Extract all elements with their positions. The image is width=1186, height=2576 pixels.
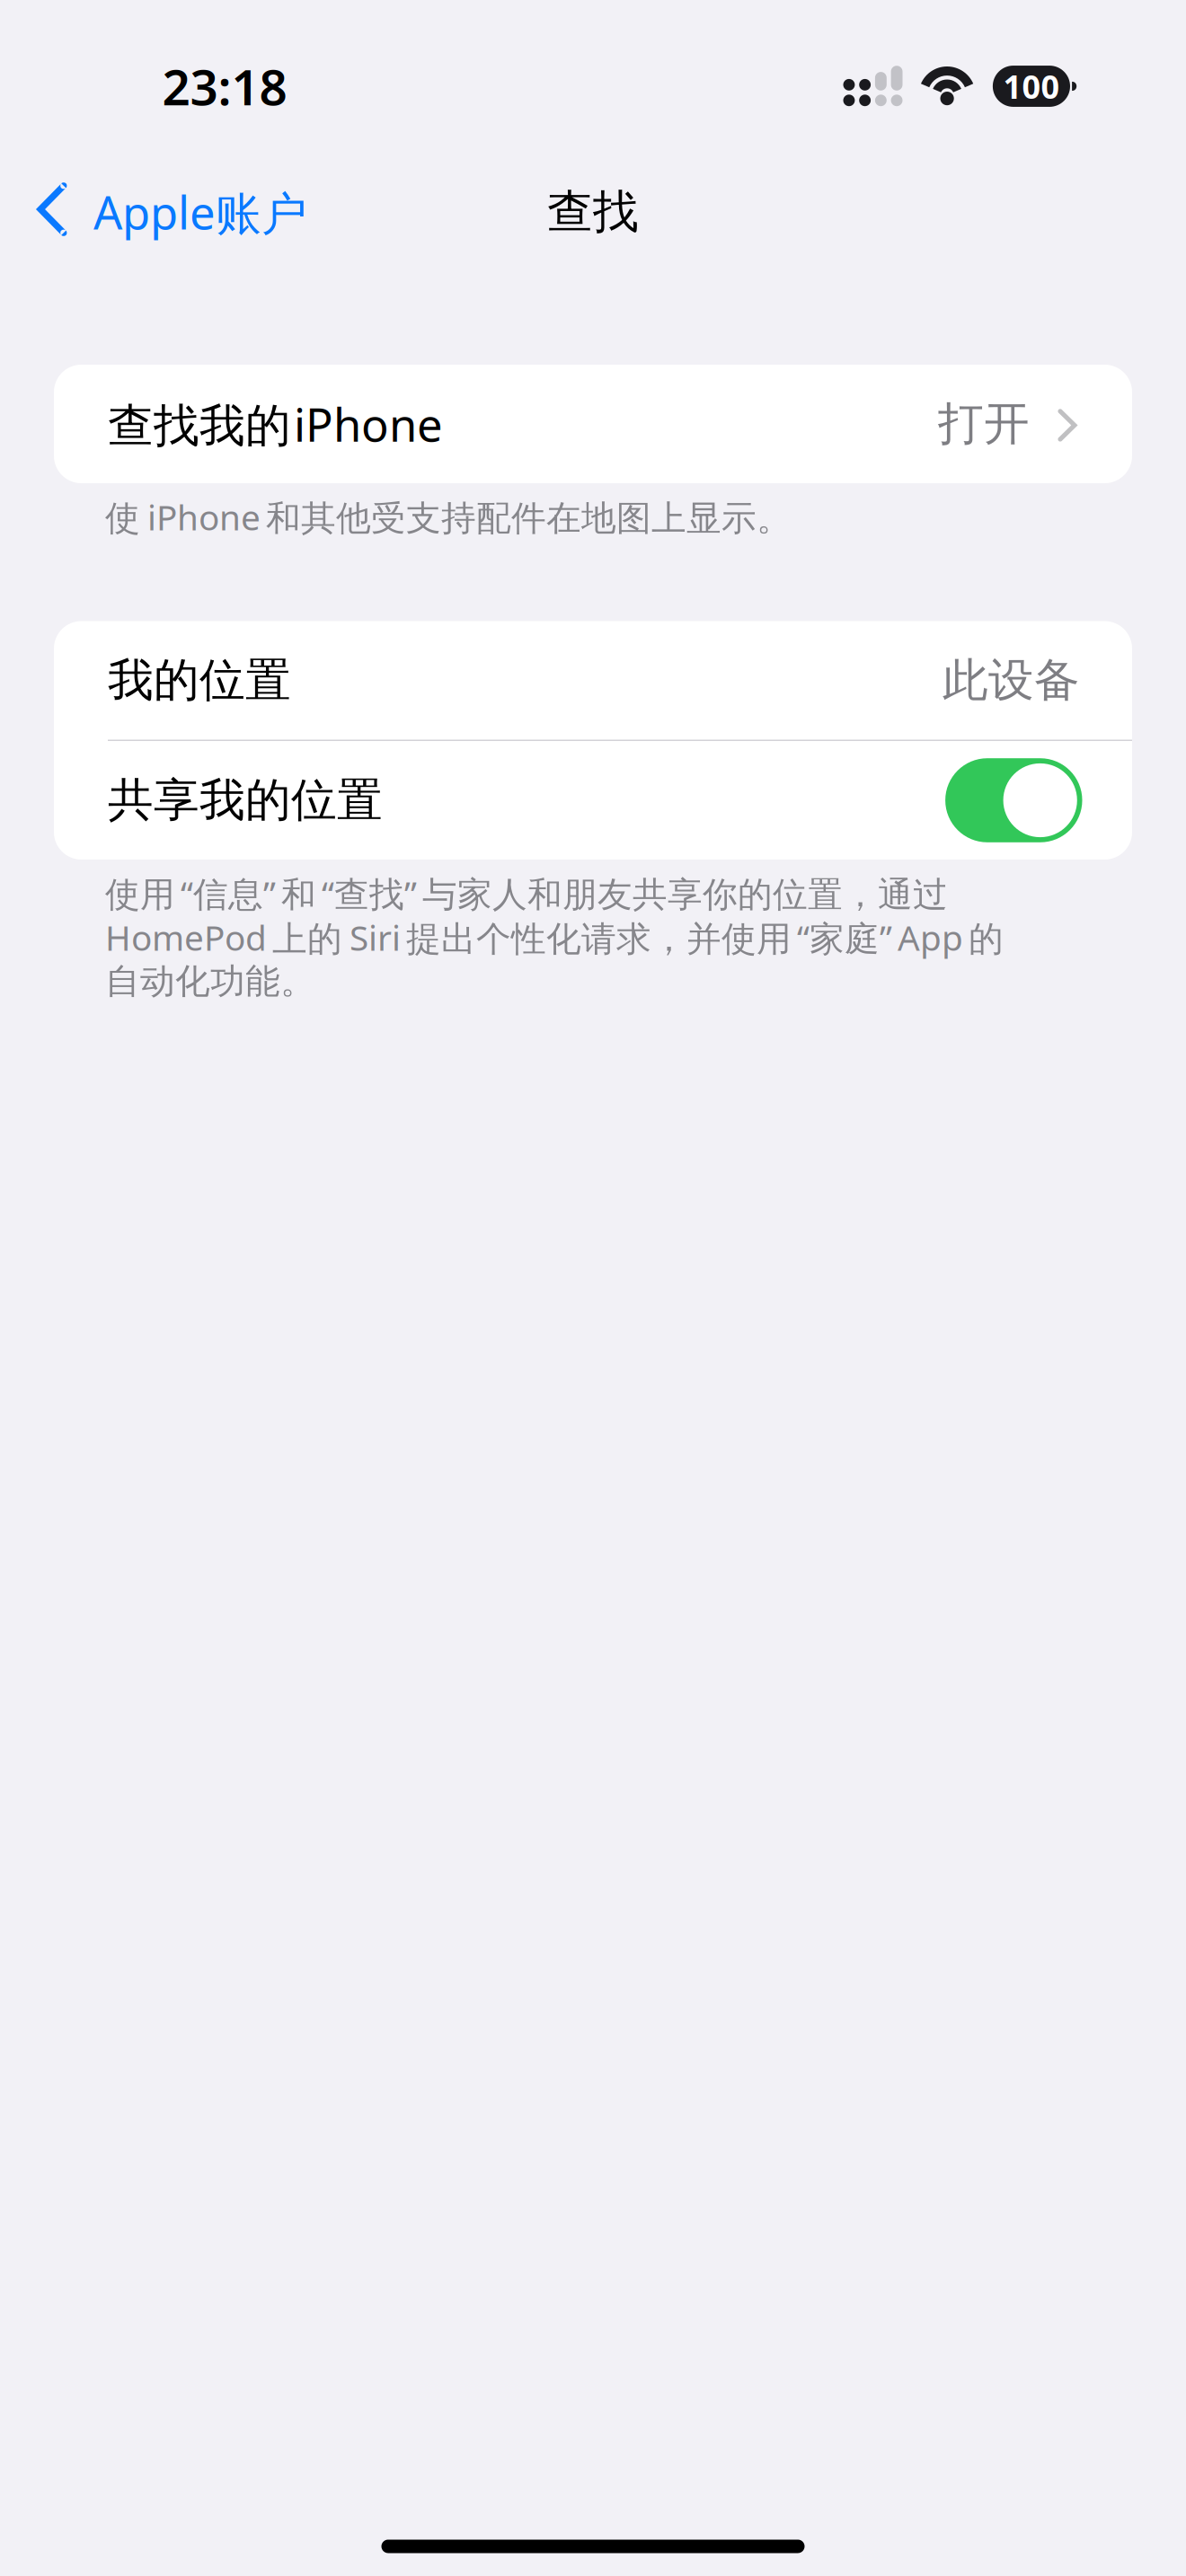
staticText: 100 [1003,65,1060,108]
staticText: Apple账户 [93,182,307,242]
staticText: 共享我的位置 [108,772,383,828]
button[interactable]: Apple账户 [0,153,329,271]
button[interactable]: 查找我的 iPhone [54,365,1132,483]
staticText: 查找我的 iPhone [108,394,443,454]
button[interactable]: 共享我的位置 [54,741,1132,860]
staticText: 我的位置 [108,652,291,708]
staticText: 此设备 [943,652,1080,708]
staticText: 使 iPhone 和其他受支持配件在地图上显示。 [105,494,792,540]
staticText: HomePod 上的 Siri 提出个性化请求，并使用 “家庭” App 的 [105,914,1004,960]
staticText: 查找 [547,184,639,240]
staticText: 23:18 [162,54,287,119]
staticText: 打开 [938,396,1030,452]
staticText: 自动化功能。 [105,960,315,1003]
staticText: 使用 “信息” 和 “查找” 与家人和朋友共享你的位置，通过 [105,870,948,916]
